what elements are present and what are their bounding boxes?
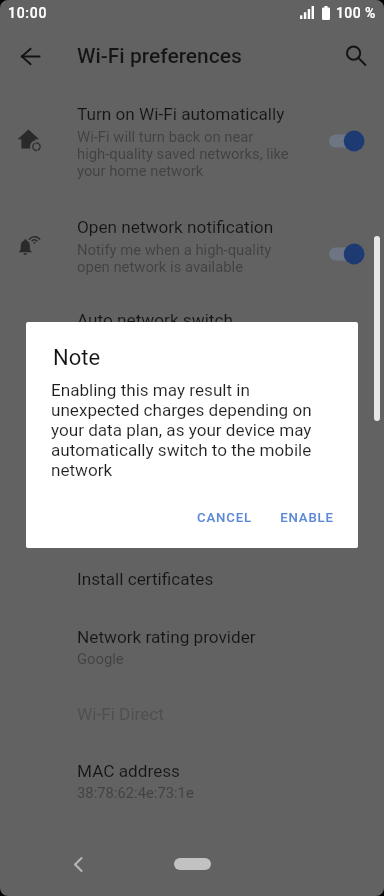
staticText: Open network notification <box>77 217 274 237</box>
staticText: Wi-Fi will turn back on near high-qualit… <box>77 128 289 179</box>
button[interactable]: Turn on Wi-Fi automatically <box>0 95 384 199</box>
button[interactable]: Toggle <box>329 240 365 268</box>
button[interactable]: Install certificates <box>0 557 384 609</box>
staticText: 10:00 <box>8 5 48 21</box>
staticText: Wi-Fi Direct <box>77 704 164 724</box>
staticText: Network rating provider <box>77 627 256 647</box>
button[interactable]: Open network notification <box>0 208 384 293</box>
staticText: Note <box>53 345 101 371</box>
staticText: ENABLE <box>280 510 334 525</box>
button[interactable]: CANCEL <box>185 502 264 533</box>
button[interactable]: Navigate up <box>6 32 54 80</box>
staticText: Install certificates <box>77 569 214 589</box>
staticText: 38:78:62:4e:73:1e <box>77 784 194 801</box>
button[interactable]: Toggle <box>329 127 365 155</box>
button[interactable]: Auto network switch <box>0 300 384 350</box>
button[interactable]: Network rating provider <box>0 615 384 683</box>
staticText: Notify me when a high-quality open netwo… <box>77 241 272 275</box>
staticText: CANCEL <box>197 510 252 525</box>
button[interactable]: MAC address <box>0 749 384 817</box>
staticText: Wi-Fi preferences <box>77 44 242 69</box>
staticText: Turn on Wi-Fi automatically <box>77 104 285 124</box>
staticText: MAC address <box>77 761 180 781</box>
button[interactable]: Home <box>174 858 211 870</box>
staticText: 100 % <box>336 5 376 21</box>
staticText: Google <box>77 650 124 667</box>
button[interactable]: Search <box>332 32 380 80</box>
staticText: Enabling this may result in unexpected c… <box>51 380 312 480</box>
button[interactable]: Back <box>60 846 96 882</box>
staticText: Auto network switch <box>77 310 233 330</box>
button[interactable]: ENABLE <box>268 502 346 533</box>
